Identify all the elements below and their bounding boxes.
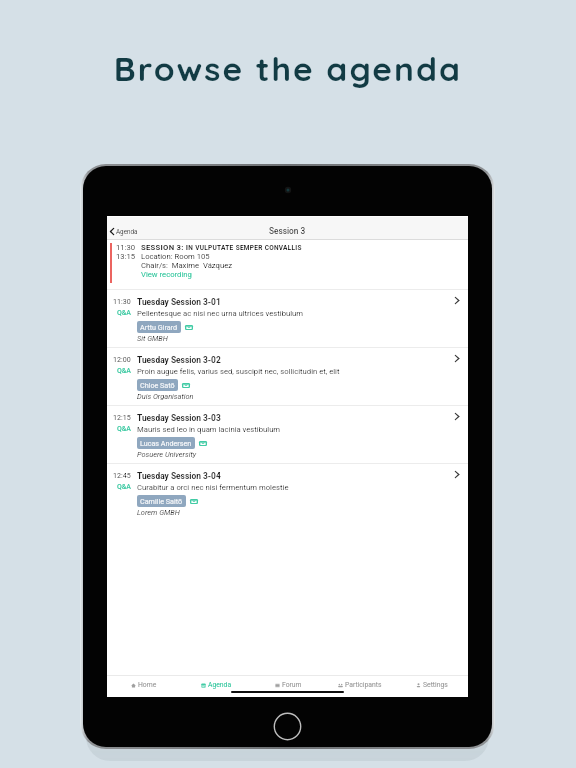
button[interactable]: Email speaker xyxy=(185,325,193,330)
staticText: Tuesday Session 3-02 xyxy=(137,355,221,365)
other: Back xyxy=(110,228,114,235)
button[interactable]: 11:30 xyxy=(107,290,468,347)
staticText: Arttu Girard xyxy=(140,323,178,331)
staticText: Sit GMBH xyxy=(137,334,168,343)
button[interactable]: Agenda xyxy=(180,676,252,694)
staticText: Lorem GMBH xyxy=(137,508,180,517)
staticText: Participants xyxy=(345,681,382,689)
other: Open session xyxy=(455,413,459,420)
staticText: 11:30 xyxy=(113,297,131,305)
other: Open session xyxy=(455,471,459,478)
staticText: Agenda xyxy=(208,681,232,689)
staticText: Q&A xyxy=(117,309,131,317)
button[interactable]: Forum xyxy=(252,676,324,694)
staticText: Settings xyxy=(423,681,448,689)
button[interactable]: Email speaker xyxy=(199,441,207,446)
button[interactable]: 12:15 xyxy=(107,406,468,463)
button[interactable]: 12:45 xyxy=(107,464,468,521)
staticText: Agenda xyxy=(116,228,138,235)
staticText: Chloe Satō xyxy=(140,381,175,389)
staticText: Camille Saitō xyxy=(140,497,183,505)
other: Home button xyxy=(274,713,301,740)
button[interactable]: Participants xyxy=(324,676,396,694)
staticText: Forum xyxy=(282,681,302,689)
staticText: Proin augue felis, varius sed, suscipit … xyxy=(137,367,340,376)
button[interactable]: Settings xyxy=(396,676,468,694)
staticText: Mauris sed leo in quam lacinia vestibulu… xyxy=(137,425,281,434)
other: Open session xyxy=(455,355,459,362)
button[interactable]: Email speaker xyxy=(190,499,198,504)
staticText: Lucas Andersen xyxy=(140,439,192,447)
staticText: Session 3 xyxy=(269,226,306,236)
staticText: Home xyxy=(138,681,157,689)
button[interactable]: Home xyxy=(107,676,180,694)
button[interactable]: Back xyxy=(108,225,140,238)
staticText: 13:15 xyxy=(116,252,136,261)
button[interactable]: Chloe Satō xyxy=(137,379,178,391)
staticText: Q&A xyxy=(117,483,131,491)
staticText: Q&A xyxy=(117,425,131,433)
button[interactable]: Arttu Girard xyxy=(137,321,181,333)
staticText: SESSION 3: IN VULPUTATE SEMPER CONVALLIS xyxy=(141,243,302,252)
staticText: Posuere University xyxy=(137,450,197,459)
staticText: 12:00 xyxy=(113,355,131,363)
button[interactable]: Lucas Andersen xyxy=(137,437,195,449)
button[interactable]: Email speaker xyxy=(182,383,190,388)
staticText: Tuesday Session 3-04 xyxy=(137,471,221,481)
staticText: Chair/s: Maxime Vázquez xyxy=(141,261,233,270)
staticText: 12:15 xyxy=(113,413,131,421)
other: Open session xyxy=(455,297,459,304)
button[interactable]: 12:00 xyxy=(107,348,468,405)
button[interactable]: Camille Saitō xyxy=(137,495,186,507)
staticText: 11:30 xyxy=(116,243,136,252)
staticText: Q&A xyxy=(117,367,131,375)
staticText: 12:45 xyxy=(113,471,131,479)
staticText: Curabitur a orci nec nisi fermentum mole… xyxy=(137,483,289,492)
staticText: Tuesday Session 3-03 xyxy=(137,413,221,423)
staticText: Pellentesque ac nisi nec urna ultrices v… xyxy=(137,309,304,318)
staticText: Tuesday Session 3-01 xyxy=(137,297,221,307)
staticText: Duis Organisation xyxy=(137,392,194,401)
staticText: Location: Room 105 xyxy=(141,252,210,261)
staticText: Browse the agenda xyxy=(0,47,576,89)
button[interactable]: View recording xyxy=(141,270,192,279)
